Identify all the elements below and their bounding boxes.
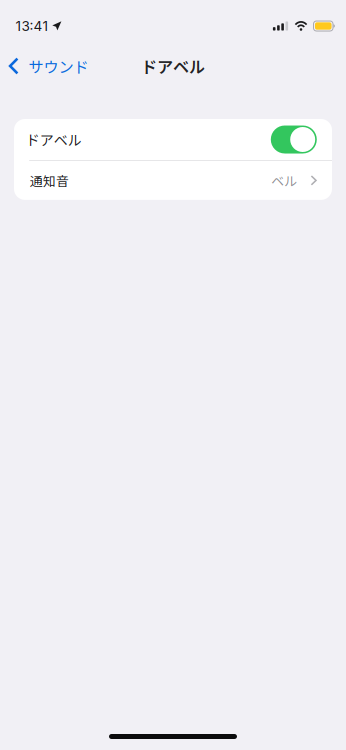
button[interactable]: ドアベル xyxy=(14,119,332,160)
staticText: 13:41 xyxy=(15,18,48,34)
staticText: ドアベル xyxy=(26,129,82,150)
button[interactable]: 通知音 xyxy=(14,161,332,200)
button[interactable]: サウンド xyxy=(0,48,98,84)
staticText: ベル xyxy=(271,171,297,190)
staticText: サウンド xyxy=(28,55,88,77)
staticText: 通知音 xyxy=(30,171,69,190)
staticText: ドアベル xyxy=(141,54,205,78)
